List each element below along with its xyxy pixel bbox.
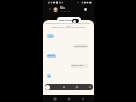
staticText: Active now <box>60 10 71 13</box>
button[interactable]: Camera <box>45 85 50 90</box>
staticText: how are u <box>47 54 56 58</box>
staticText: good morning <box>74 45 88 48</box>
staticText: Mia <box>60 6 65 10</box>
staticText: people in this chat can read them. <box>45 26 92 29</box>
staticText: ok <box>48 75 51 78</box>
button[interactable]: Share <box>88 85 92 89</box>
button[interactable]: Back <box>48 7 52 11</box>
staticText: Chat locked <box>59 19 73 22</box>
button[interactable]: Back <box>80 96 85 101</box>
button[interactable]: Chat locked <box>57 17 81 23</box>
staticText: Hey <box>49 35 53 38</box>
button[interactable]: Home <box>66 96 71 101</box>
button[interactable]: ok <box>47 74 51 78</box>
staticText: Messages and calls are end-to-end encryp… <box>45 22 92 27</box>
button[interactable]: Close <box>62 85 66 89</box>
staticText: Make things great! <box>71 64 88 68</box>
button[interactable]: Recents <box>52 96 57 101</box>
button[interactable]: Call <box>83 7 87 11</box>
button[interactable]: good morning <box>74 44 88 48</box>
button[interactable]: how are u <box>47 54 56 58</box>
button[interactable]: Make things great! <box>71 64 88 68</box>
button[interactable]: Sticker <box>75 85 79 89</box>
button[interactable]: Hey <box>47 34 54 38</box>
